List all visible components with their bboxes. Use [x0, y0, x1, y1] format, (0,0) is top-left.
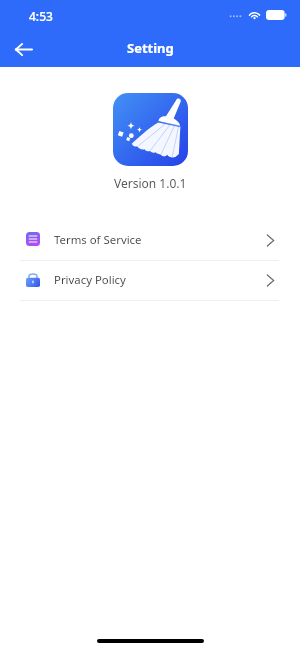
staticText: Setting [127, 39, 174, 57]
staticText: Version 1.0.1 [114, 175, 187, 191]
staticText: 4:53 [29, 8, 53, 24]
button[interactable]: Privacy Policy [0, 261, 300, 300]
button[interactable]: Back [6, 32, 40, 66]
staticText: Privacy Policy [54, 272, 126, 288]
staticText: Terms of Service [54, 232, 142, 248]
button[interactable]: Terms of Service [0, 221, 300, 260]
